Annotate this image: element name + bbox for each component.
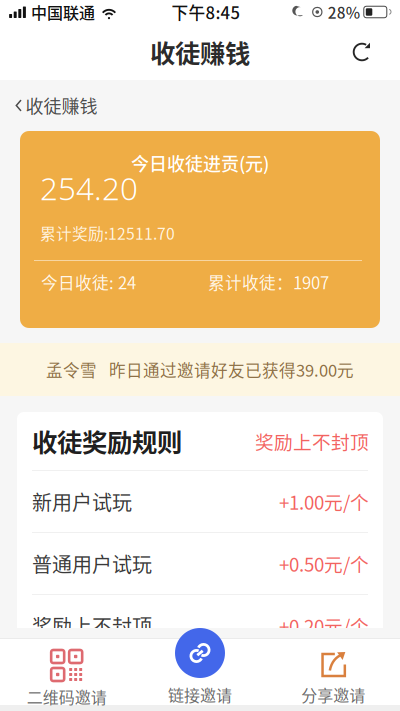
staticText: 累计奖励:12511.70: [40, 222, 175, 244]
staticText: 孟令雪 昨日通过邀请好友已获得39.00元: [46, 357, 354, 381]
staticText: +0.20元/个: [279, 612, 369, 639]
staticText: 28%: [328, 1, 360, 23]
staticText: 奖励上不封顶: [255, 427, 369, 454]
staticText: 下午8:45: [171, 0, 240, 24]
staticText: 累计收徒：1907: [208, 270, 329, 294]
button[interactable]: 二维码邀请: [0, 628, 133, 711]
staticText: 中国联通: [31, 0, 95, 24]
button[interactable]: 刷新: [336, 28, 400, 76]
staticText: 分享邀请: [301, 683, 365, 706]
staticText: 今日收徒: 24: [41, 270, 136, 294]
staticText: 254.20: [40, 167, 138, 209]
button[interactable]: 链接邀请: [133, 628, 267, 711]
staticText: 今日收徒进贡(元): [131, 150, 269, 176]
staticText: 收徒奖励规则: [32, 423, 182, 459]
staticText: 收徒赚钱: [25, 92, 97, 119]
button[interactable]: 分享邀请: [267, 628, 400, 711]
staticText: 普通用户试玩: [32, 549, 152, 578]
staticText: 二维码邀请: [27, 685, 107, 708]
button[interactable]: 收徒赚钱: [0, 83, 112, 128]
staticText: 奖励上不封顶: [32, 611, 152, 640]
staticText: 收徒赚钱: [150, 34, 250, 70]
staticText: 链接邀请: [168, 683, 232, 706]
staticText: +1.00元/个: [279, 488, 369, 515]
staticText: 新用户试玩: [32, 487, 132, 516]
staticText: +0.50元/个: [279, 550, 369, 577]
